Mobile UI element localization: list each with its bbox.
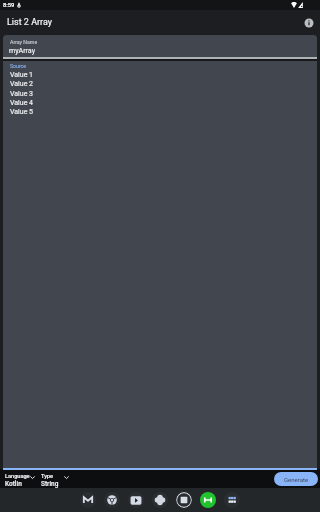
button[interactable]: Info: [301, 15, 317, 31]
staticText: Value 1: [10, 71, 34, 79]
button[interactable]: Gmail: [80, 492, 96, 508]
button[interactable]: Chrome: [104, 492, 120, 508]
staticText: Value 3: [10, 90, 34, 98]
button[interactable]: Android Studio Preview: [200, 492, 216, 508]
button[interactable]: Value 2: [3, 79, 317, 88]
staticText: Kotlin: [5, 480, 22, 488]
button[interactable]: Value 4: [3, 98, 317, 107]
staticText: Type: [41, 473, 54, 480]
button[interactable]: Value 1: [3, 70, 317, 79]
button[interactable]: Language Kotlin: [3, 470, 39, 487]
button[interactable]: Android Studio: [176, 492, 192, 508]
staticText: Value 5: [10, 108, 34, 116]
button[interactable]: Array Name: [3, 35, 317, 59]
staticText: Value 2: [10, 80, 34, 88]
button[interactable]: Generate: [274, 472, 318, 486]
staticText: myArray: [9, 46, 36, 54]
staticText: String: [41, 480, 59, 488]
staticText: Source: [10, 63, 27, 69]
button[interactable]: Value 3: [3, 89, 317, 98]
button[interactable]: YouTube: [128, 492, 144, 508]
button[interactable]: All apps: [224, 492, 240, 508]
staticText: Language: [5, 473, 30, 480]
button[interactable]: Value 5: [3, 107, 317, 116]
staticText: Value 4: [10, 99, 34, 107]
button[interactable]: Photos: [152, 492, 168, 508]
staticText: List 2 Array: [7, 17, 53, 28]
staticText: 8:59: [3, 2, 15, 9]
staticText: Array Name: [10, 39, 38, 45]
button[interactable]: Type String: [39, 470, 73, 487]
staticText: Generate: [284, 476, 309, 483]
